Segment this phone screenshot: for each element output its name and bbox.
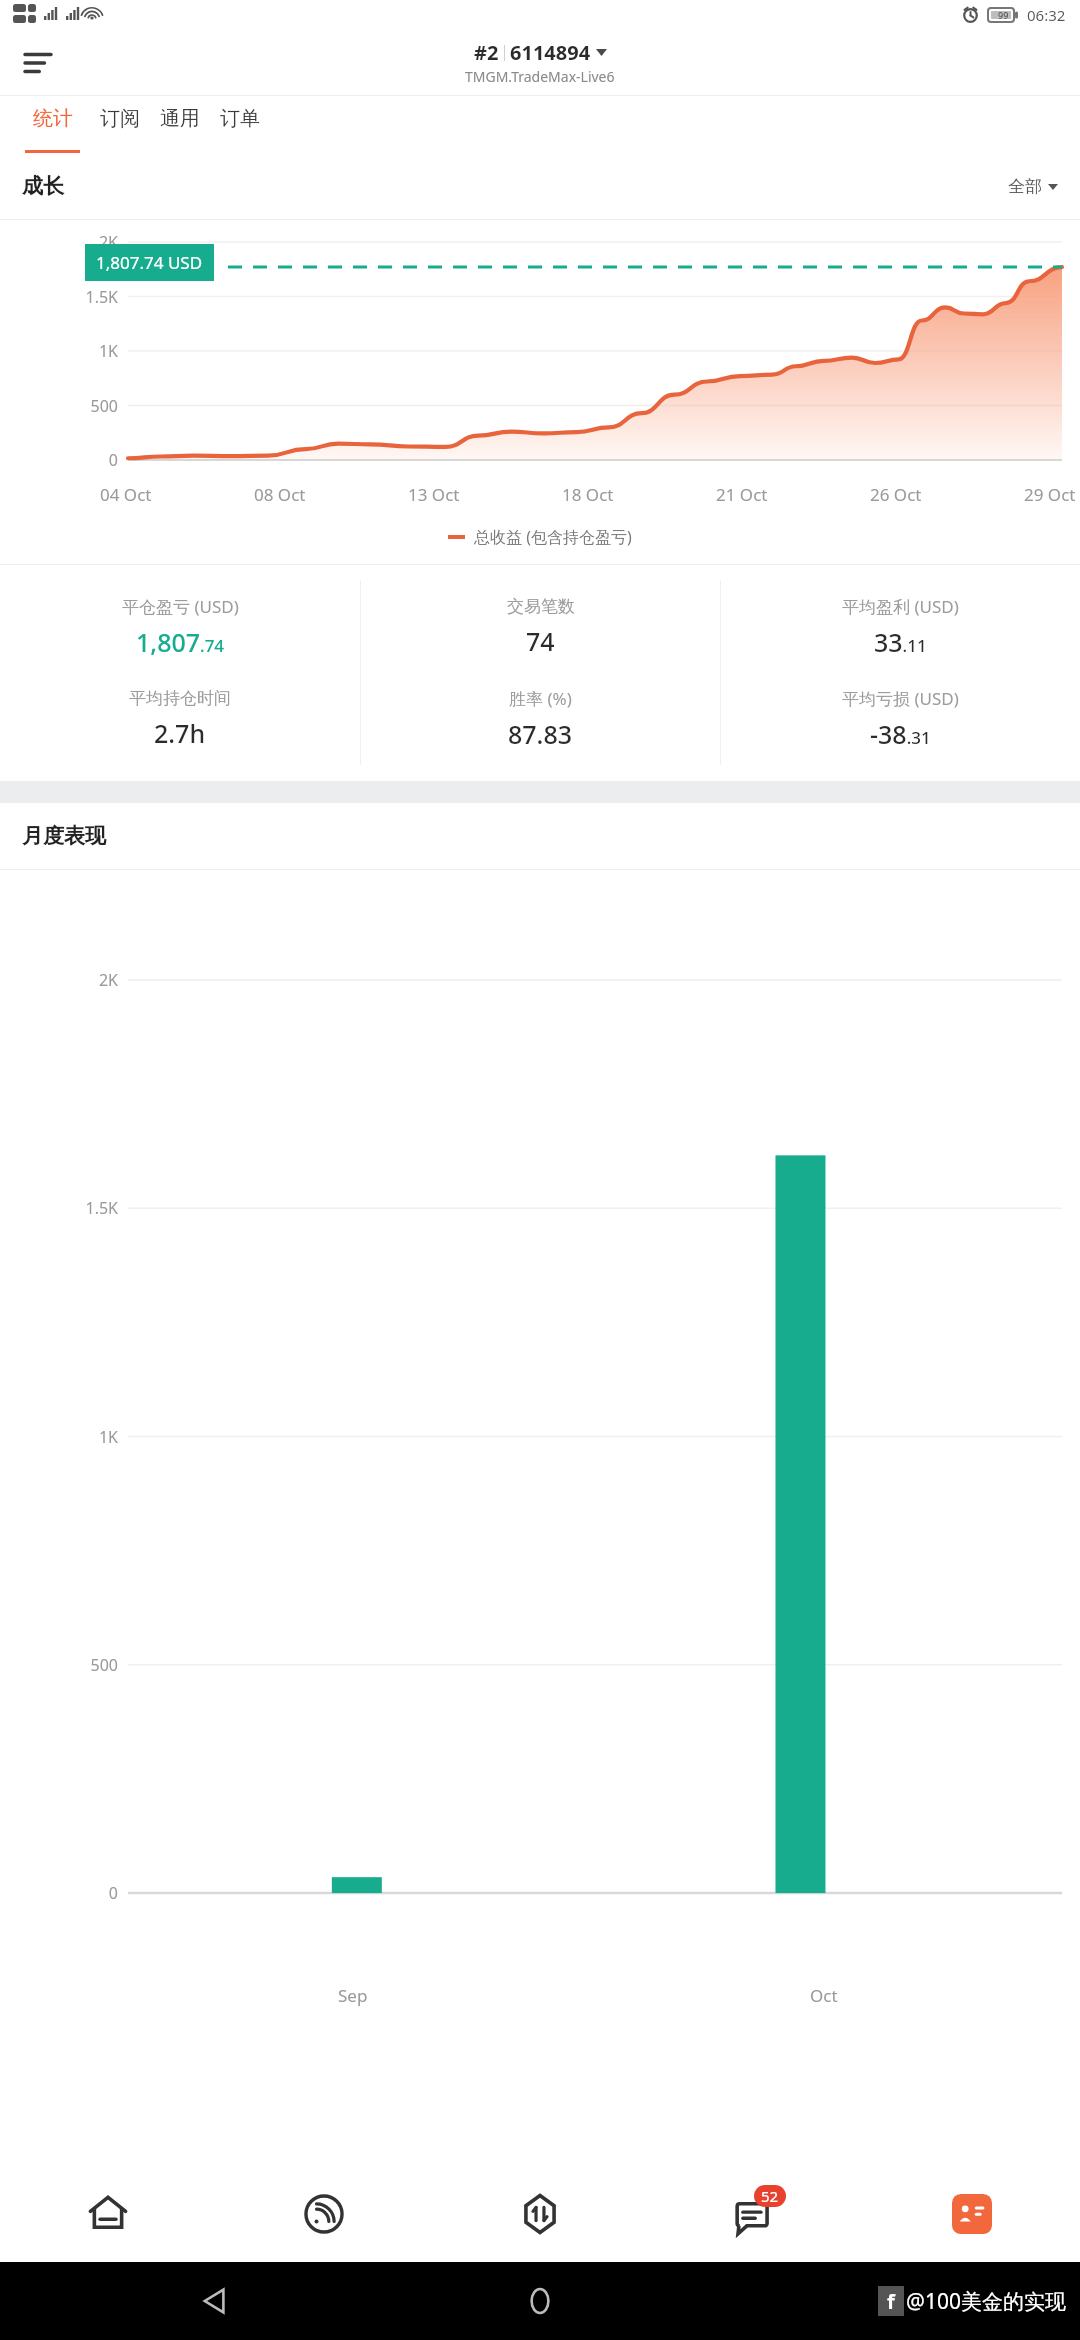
staticText: 33.11 [874,625,927,659]
staticText: 99 [998,9,1009,21]
button[interactable]: 订单 [220,96,260,153]
button[interactable]: 平均盈利 (USD) [721,581,1080,673]
button[interactable]: 订阅 [100,96,140,153]
button[interactable]: Trade [432,2165,648,2262]
button[interactable]: Messages [648,2165,864,2262]
staticText: 87.83 [508,717,573,751]
staticText: @100美金的实现 [906,2287,1066,2316]
button[interactable]: 平仓盈亏 (USD) [0,581,360,673]
staticText: 1.5K [0,286,118,308]
staticText: 06:32 [1027,5,1066,25]
staticText: 21 Oct [716,483,768,506]
staticText: f [887,2288,895,2315]
staticText: 500 [0,395,118,417]
staticText: 52 [761,2186,779,2206]
staticText: 6114894 [510,39,591,66]
staticText: 订阅 [100,106,140,131]
staticText: 1K [0,340,118,362]
staticText: 订单 [220,106,260,131]
staticText: 1.5K [0,1197,118,1219]
button[interactable]: 统计 [25,96,80,153]
staticText: 2K [0,231,118,253]
staticText: -38.31 [870,717,931,751]
staticText: 0 [0,449,118,471]
button[interactable]: Profile [864,2165,1080,2262]
staticText: #2 [474,39,499,66]
staticText: TMGM.TradeMax-Live6 [465,67,615,86]
button[interactable]: 交易笔数 [361,581,720,673]
staticText: Oct [810,1984,838,2007]
staticText: 1,807.74 USD [96,251,203,274]
staticText: 通用 [160,106,200,131]
button[interactable]: Menu [14,39,62,87]
staticText: Sep [338,1984,368,2007]
staticText: 平均持仓时间 [129,688,231,709]
staticText: 平均亏损 (USD) [842,687,959,710]
button[interactable]: 全部 [1008,176,1058,197]
staticText: 平均盈利 (USD) [842,595,959,618]
staticText: 全部 [1008,176,1042,197]
other: Back [200,2286,230,2316]
staticText: 08 Oct [254,483,306,506]
staticText: 26 Oct [870,483,922,506]
button[interactable]: #2 [465,39,615,86]
button[interactable]: 通用 [160,96,200,153]
staticText: 统计 [33,106,73,131]
button[interactable]: 胜率 (%) [361,673,720,765]
button[interactable]: Signals [216,2165,432,2262]
staticText: 74 [526,624,555,658]
staticText: 2.7h [154,716,206,750]
staticText: 成长 [22,173,64,199]
staticText: 13 Oct [408,483,460,506]
staticText: 总收益 (包含持仓盈亏) [474,526,632,548]
staticText: 2K [0,969,118,991]
staticText: 平仓盈亏 (USD) [122,595,239,618]
button[interactable]: Home [0,2165,216,2262]
staticText: 500 [0,1654,118,1676]
staticText: 胜率 (%) [509,687,572,710]
staticText: 0 [0,1882,118,1904]
staticText: 29 Oct [1024,483,1076,506]
staticText: 1K [0,1426,118,1448]
staticText: 交易笔数 [507,596,575,617]
staticText: 18 Oct [562,483,614,506]
button[interactable]: 平均持仓时间 [0,673,360,765]
other: Home [525,2286,555,2316]
staticText: 1,807.74 [136,625,225,659]
staticText: 04 Oct [100,483,152,506]
button[interactable]: 平均亏损 (USD) [721,673,1080,765]
staticText: 月度表现 [22,823,106,849]
